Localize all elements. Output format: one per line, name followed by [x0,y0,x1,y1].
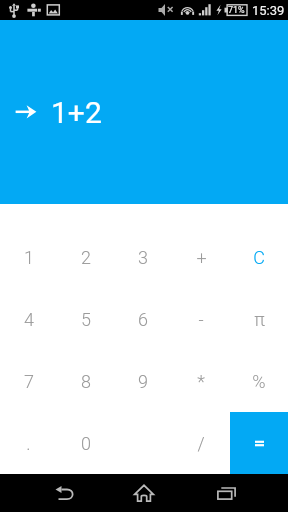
staticText: 1 [24,247,34,268]
button[interactable]: + [172,226,230,288]
button[interactable]: 4 [0,288,57,350]
staticText: * [197,371,205,392]
button[interactable]: Back [31,475,99,512]
button[interactable]: % [230,350,288,412]
staticText: 1+2 [51,95,102,130]
button[interactable]: 7 [0,350,57,412]
button[interactable]: 2 [57,226,114,288]
staticText: / [197,433,205,454]
staticText: 4 [24,309,34,330]
staticText: % [252,371,266,392]
staticText: π [254,309,265,330]
button[interactable]: Expression 1+2 [0,20,288,204]
staticText: - [198,309,204,330]
staticText: . [26,433,31,454]
button[interactable]: 9 [114,350,172,412]
button[interactable]: C [230,226,288,288]
staticText: 7 [24,371,34,392]
button[interactable]: 3 [114,226,172,288]
staticText: 0 [81,433,91,454]
button[interactable]: 0 [57,412,114,474]
button[interactable]: Recent apps [192,474,260,512]
button[interactable]: 5 [57,288,114,350]
staticText: C [253,247,265,268]
staticText: 2 [81,247,91,268]
staticText: 8 [81,371,91,392]
staticText: 9 [138,371,148,392]
staticText: 71% [228,5,245,16]
button[interactable]: - [172,288,230,350]
button[interactable]: 1 [0,226,57,288]
staticText: 15:39 [252,3,285,18]
staticText: 5 [81,309,91,330]
button[interactable]: * [172,350,230,412]
button[interactable]: Equals [230,412,288,474]
button[interactable]: 8 [57,350,114,412]
staticText: 3 [138,247,148,268]
button[interactable]: 6 [114,288,172,350]
staticText: 6 [138,309,148,330]
button[interactable]: / [172,412,230,474]
button[interactable]: π [230,288,288,350]
staticText: + [196,247,207,268]
button[interactable]: Home [110,474,178,512]
